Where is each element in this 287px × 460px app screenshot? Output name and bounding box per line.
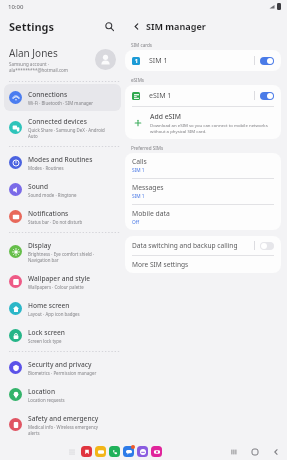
staticText: SIM manager xyxy=(146,20,206,32)
staticText: More SIM settings xyxy=(132,260,189,269)
staticText: Preferred SIMs xyxy=(131,145,164,151)
staticText: Lock screen xyxy=(28,328,65,337)
staticText: Notifications xyxy=(28,209,69,218)
staticText: Data switching and backup calling xyxy=(132,241,254,250)
button[interactable]: Back xyxy=(129,19,143,33)
staticText: Security and privacy xyxy=(28,360,92,369)
button[interactable]: Data switching and backup calling xyxy=(125,236,281,255)
button[interactable]: Security and privacy xyxy=(4,354,121,381)
button[interactable]: Messages xyxy=(125,179,281,204)
staticText: Status bar · Do not disturb xyxy=(28,219,83,225)
staticText: Biometrics · Permission manager xyxy=(28,370,97,376)
button[interactable]: Search xyxy=(101,18,117,34)
button[interactable]: Calls xyxy=(125,153,281,178)
staticText: Connected devices xyxy=(28,117,87,126)
staticText: Wallpaper and style xyxy=(28,274,91,283)
staticText: Safety and emergency xyxy=(28,414,99,423)
staticText: Wi-Fi · Bluetooth · SIM manager xyxy=(28,100,94,106)
button[interactable]: Notifications xyxy=(4,203,121,230)
staticText: Modes and Routines xyxy=(28,155,93,164)
staticText: Wallpapers · Colour palette xyxy=(28,284,84,290)
button[interactable]: Display xyxy=(4,235,121,268)
button[interactable]: Lock screen xyxy=(4,322,121,349)
staticText: 10:00 xyxy=(8,3,24,11)
button[interactable]: App xyxy=(81,446,92,457)
staticText: Settings xyxy=(9,19,55,34)
staticText: Alan Jones xyxy=(9,46,58,60)
staticText: Display xyxy=(28,241,51,250)
staticText: Sound mode · Ringtone xyxy=(28,192,77,198)
button[interactable]: Connections xyxy=(4,84,121,111)
staticText: Location requests xyxy=(28,397,65,403)
button[interactable]: Location xyxy=(4,381,121,408)
button[interactable]: Wallpaper and style xyxy=(4,268,121,295)
button[interactable]: More SIM settings xyxy=(125,256,281,273)
staticText: SIM cards xyxy=(131,42,153,48)
staticText: Download an eSIM so you can connect to m… xyxy=(150,122,268,134)
staticText: Sound xyxy=(28,182,49,191)
button[interactable]: eSIM 1 xyxy=(125,85,281,106)
staticText: Home screen xyxy=(28,301,70,310)
staticText: Screen lock type xyxy=(28,338,62,344)
button[interactable]: Sound xyxy=(4,176,121,203)
staticText: Off xyxy=(132,219,140,226)
button[interactable]: App xyxy=(109,446,120,457)
staticText: Brightness · Eye comfort shield · Naviga… xyxy=(28,251,95,263)
staticText: SIM 1 xyxy=(132,193,145,200)
staticText: ala*********@hotmail.com xyxy=(9,67,69,73)
button[interactable]: On xyxy=(260,92,274,100)
button[interactable]: Add eSIM xyxy=(125,107,281,139)
button[interactable]: Home screen xyxy=(4,295,121,322)
button[interactable]: Connected devices xyxy=(4,111,121,144)
staticText: 1 xyxy=(135,58,138,65)
staticText: Messages xyxy=(132,183,164,192)
button[interactable]: Modes and Routines xyxy=(4,149,121,176)
staticText: eSIM 1 xyxy=(149,91,254,101)
button[interactable]: App xyxy=(95,446,106,457)
button[interactable]: Off xyxy=(260,242,274,250)
button[interactable]: All apps xyxy=(66,446,77,457)
staticText: Connections xyxy=(28,90,68,99)
button[interactable]: App xyxy=(151,446,162,457)
button[interactable]: 1 xyxy=(125,50,281,71)
staticText: Layout · App icon badges xyxy=(28,311,80,317)
button[interactable]: App xyxy=(137,446,148,457)
staticText: Mobile data xyxy=(132,209,170,218)
button[interactable]: Recents xyxy=(228,446,239,457)
button[interactable]: Alan Jones xyxy=(0,39,125,79)
staticText: Modes · Routines xyxy=(28,165,64,171)
button[interactable]: Safety and emergency xyxy=(4,408,121,441)
button[interactable]: Back xyxy=(270,446,281,457)
button[interactable]: On xyxy=(260,57,274,65)
staticText: Add eSIM xyxy=(150,112,181,121)
staticText: eSIMs xyxy=(131,77,145,83)
button[interactable]: App xyxy=(123,446,134,457)
staticText: SIM 1 xyxy=(149,56,254,66)
staticText: Location xyxy=(28,387,56,396)
staticText: Calls xyxy=(132,157,147,166)
staticText: Medical info · Wireless emergency alerts xyxy=(28,424,99,436)
staticText: Quick Share · Samsung DeX · Android Auto xyxy=(28,127,105,139)
staticText: Samsung account · xyxy=(9,61,49,67)
staticText: SIM 1 xyxy=(132,167,145,174)
button[interactable]: Home xyxy=(249,446,260,457)
button[interactable]: Mobile data xyxy=(125,205,281,230)
